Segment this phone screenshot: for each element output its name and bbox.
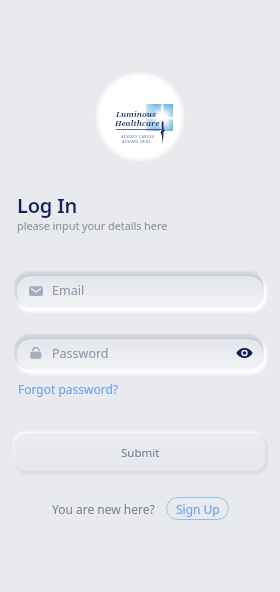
staticText: Log In — [17, 192, 77, 219]
button[interactable]: Show password — [234, 343, 254, 363]
staticText: Healthcare — [115, 118, 160, 129]
staticText: Luminous — [116, 109, 156, 120]
staticText: please input your details here — [17, 218, 168, 233]
staticText: ALWAYS CARING — [121, 134, 155, 139]
staticText: Password — [52, 345, 109, 362]
button[interactable]: Sign Up — [166, 497, 229, 520]
staticText: Submit — [121, 445, 160, 461]
button[interactable]: Forgot password? — [16, 379, 121, 399]
button[interactable]: Password — [17, 337, 263, 369]
staticText: Sign Up — [176, 501, 220, 517]
staticText: ALWAYS HERE. — [122, 139, 153, 144]
button[interactable]: Email — [17, 274, 263, 307]
staticText: Forgot password? — [18, 381, 119, 397]
staticText: Email — [52, 282, 85, 299]
staticText: You are new here? — [52, 501, 155, 517]
button[interactable]: Submit — [15, 434, 265, 471]
